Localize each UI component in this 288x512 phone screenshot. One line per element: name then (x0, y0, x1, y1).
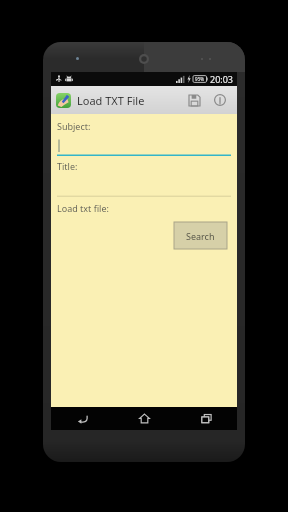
button[interactable]: About (207, 86, 233, 114)
button[interactable]: Search (174, 222, 227, 249)
staticText: Search (186, 230, 215, 242)
button[interactable] (57, 136, 231, 156)
button[interactable]: Home (113, 407, 175, 430)
staticText: Title: (57, 160, 78, 172)
staticText: 20:03 (210, 73, 234, 85)
button[interactable] (57, 176, 231, 197)
staticText: 95% (195, 76, 204, 82)
staticText: Load txt file: (57, 202, 109, 214)
button[interactable]: Back (51, 407, 113, 430)
button[interactable]: Save (181, 86, 207, 114)
staticText: Subject: (57, 120, 91, 132)
button[interactable]: Recent apps (175, 407, 237, 430)
staticText: Load TXT File (77, 93, 145, 108)
